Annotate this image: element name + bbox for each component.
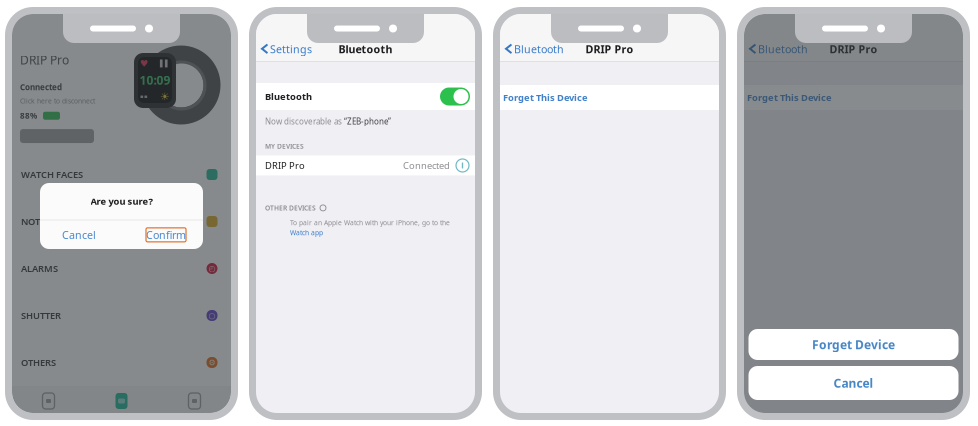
button[interactable]: Forget Device [748,329,958,360]
button[interactable]: NOTIFICATIONS [12,198,231,245]
button[interactable]: ALARMS [12,245,231,292]
staticText: ○ [208,311,215,320]
button[interactable]: SHUTTER [12,292,231,339]
button[interactable]: Settings [256,37,312,61]
staticText: MY DEVICES [265,142,304,150]
staticText: Connected [20,82,62,92]
button[interactable]: Forget This Device [500,85,719,110]
staticText: Bluetooth [338,42,392,56]
staticText: Click here to disconnect [20,97,95,105]
button[interactable]: Bluetooth [744,37,808,61]
staticText: Bluetooth [758,42,808,56]
staticText: Settings [270,42,312,56]
button[interactable]: DRIP Pro [256,155,475,175]
button[interactable]: Bluetooth [256,83,475,110]
staticText: Forget Device [812,336,895,352]
button[interactable]: OTHERS [12,339,231,386]
button[interactable]: WATCH FACES [12,151,231,198]
staticText: ▪▪ [140,93,148,100]
staticText: DRIP Pro [20,52,69,68]
button[interactable]: Watch [85,386,158,416]
staticText: OTHERS [21,356,56,369]
staticText: ALARMS [21,262,58,275]
staticText: OTHER DEVICES [265,203,316,212]
staticText: ♥ [140,58,148,69]
staticText: ◴ [208,264,215,273]
staticText: DRIP Pro [265,159,305,172]
button[interactable]: Device [12,386,85,416]
staticText: WATCH FACES [21,168,83,181]
staticText: Forget This Device [503,91,588,104]
staticText: Confirm [146,228,186,242]
staticText: Forget This Device [747,91,832,104]
button[interactable]: Settings [158,386,231,416]
staticText: ⚙ [208,358,215,367]
staticText: 88% [20,110,37,121]
staticText: Watch app [290,228,323,237]
button[interactable]: Cancel [43,220,115,249]
staticText: Bluetooth [514,42,564,56]
staticText: SHUTTER [21,309,61,322]
button[interactable]: Confirm [135,220,200,249]
button[interactable]: Cancel [748,366,958,400]
staticText: Are you sure? [90,195,152,207]
staticText: NOTIFICATIONS [21,215,90,228]
staticText: DRIP Pro [585,42,633,56]
staticText: Cancel [62,228,96,242]
button[interactable]: Bluetooth [500,37,564,61]
staticText: DRIP Pro [829,42,877,56]
staticText: “ZEB-phone” [344,116,391,127]
staticText: ▌▌ [160,60,170,67]
button[interactable]: Watch app [290,228,323,237]
staticText: ☀ [160,90,170,102]
staticText: To pair an Apple Watch with your iPhone,… [290,218,450,227]
staticText: Bluetooth [265,90,312,103]
staticText: Connected [403,159,450,172]
staticText: 10:09 [139,72,170,88]
staticText: Now discoverable as [265,116,344,127]
staticText: Cancel [833,375,873,391]
button[interactable]: Forget This Device [744,85,963,110]
